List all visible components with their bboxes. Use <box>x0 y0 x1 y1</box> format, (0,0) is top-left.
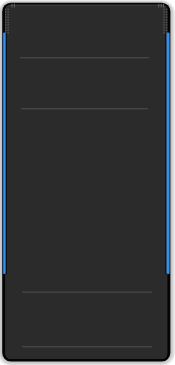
button[interactable]: Navigate up <box>6 6 169 57</box>
button[interactable] <box>6 345 169 358</box>
button[interactable] <box>6 291 169 345</box>
button[interactable] <box>6 57 169 108</box>
button[interactable]: Navigate up <box>6 22 26 42</box>
button[interactable] <box>6 108 169 291</box>
